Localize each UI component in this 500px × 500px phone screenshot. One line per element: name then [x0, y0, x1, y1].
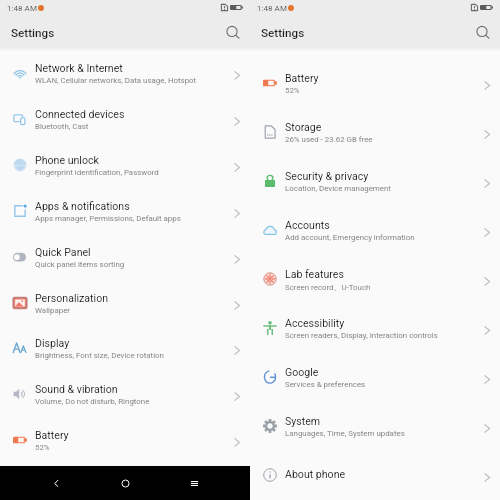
staticText: WLAN, Cellular networks, Data usage, Hot…	[35, 76, 197, 85]
button[interactable]: Search	[219, 19, 245, 45]
button[interactable]: Battery	[0, 418, 250, 462]
button[interactable]: Accounts	[250, 208, 500, 252]
staticText: Quick panel items sorting	[35, 260, 125, 269]
button[interactable]: About phone	[250, 453, 500, 497]
staticText: Apps manager, Permissions, Default apps	[35, 214, 181, 223]
staticText: Quick Panel	[35, 246, 91, 258]
button[interactable]: Display	[0, 326, 250, 370]
staticText: Display	[35, 337, 70, 349]
button[interactable]: Quick Panel	[0, 235, 250, 279]
staticText: Add account, Emergency information	[285, 233, 415, 242]
staticText: Screen readers, Display, Interaction con…	[285, 331, 438, 340]
staticText: Settings	[261, 26, 305, 40]
button[interactable]: Connected devices	[0, 97, 250, 141]
button[interactable]: Google	[250, 355, 500, 399]
staticText: Personalization	[35, 292, 109, 304]
button[interactable]: Search	[469, 19, 495, 45]
staticText: Brightness, Font size, Device rotation	[35, 351, 164, 360]
staticText: Wallpaper	[35, 306, 71, 315]
staticText: 52%	[35, 443, 50, 452]
button[interactable]: System	[250, 404, 500, 448]
staticText: Services & preferences	[285, 380, 366, 389]
staticText: Connected devices	[35, 108, 125, 120]
staticText: Apps & notifications	[35, 200, 130, 212]
staticText: Screen record、U-Touch	[285, 282, 371, 292]
staticText: Battery	[285, 72, 319, 84]
button[interactable]: Home	[111, 466, 139, 500]
button[interactable]: Back	[42, 466, 70, 500]
staticText: Security & privacy	[285, 170, 369, 182]
staticText: Languages, Time, System updates	[285, 429, 405, 438]
staticText: Network & Internet	[35, 62, 123, 74]
button[interactable]: Apps & notifications	[0, 189, 250, 233]
button[interactable]: Network & Internet	[0, 51, 250, 95]
staticText: 1:48 AM	[257, 3, 287, 12]
staticText: Settings	[11, 26, 55, 40]
staticText: Bluetooth, Cast	[35, 122, 89, 131]
staticText: Volume, Do not disturb, Ringtone	[35, 397, 150, 406]
staticText: Storage	[285, 121, 322, 133]
staticText: 26% used - 23.62 GB free	[285, 135, 373, 144]
staticText: Location, Device management	[285, 184, 391, 193]
button[interactable]: Phone unlock	[0, 143, 250, 187]
staticText: 52%	[285, 86, 300, 95]
button[interactable]: Personalization	[0, 281, 250, 325]
staticText: Accounts	[285, 219, 330, 231]
staticText: System	[285, 415, 321, 427]
staticText: Battery	[35, 429, 69, 441]
staticText: Fingerprint identification, Password	[35, 168, 159, 177]
button[interactable]: Battery	[250, 61, 500, 105]
staticText: 1:48 AM	[7, 3, 37, 12]
staticText: Lab features	[285, 268, 344, 280]
staticText: About phone	[285, 468, 346, 480]
button[interactable]: Storage	[250, 110, 500, 154]
button[interactable]: Sound & vibration	[0, 372, 250, 416]
staticText: Accessibility	[285, 317, 345, 329]
button[interactable]: Lab features	[250, 257, 500, 301]
staticText: Google	[285, 366, 319, 378]
staticText: Phone unlock	[35, 154, 99, 166]
staticText: Sound & vibration	[35, 383, 118, 395]
button[interactable]: Recents	[180, 466, 208, 500]
button[interactable]: Security & privacy	[250, 159, 500, 203]
button[interactable]: Accessibility	[250, 306, 500, 350]
